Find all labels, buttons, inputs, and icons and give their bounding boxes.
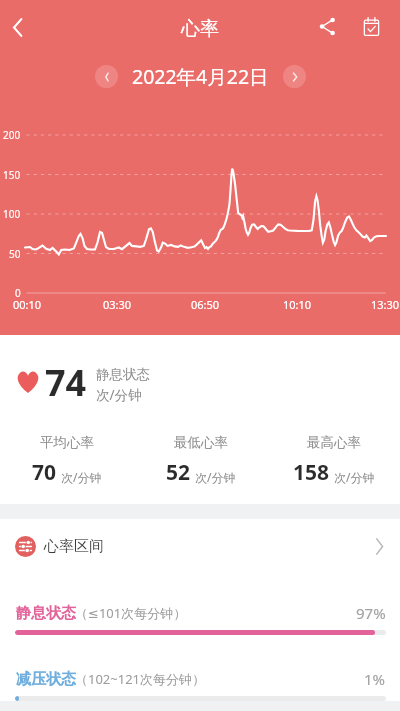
staticText: 150: [3, 168, 21, 182]
staticText: 158: [293, 458, 330, 487]
staticText: （≤101次每分钟）: [75, 604, 187, 622]
staticText: 03:30: [103, 297, 132, 312]
staticText: 心率: [0, 17, 400, 41]
button[interactable]: 减压状态: [0, 669, 400, 701]
button[interactable]: Share: [309, 8, 345, 44]
button[interactable]: Next day: [283, 65, 306, 88]
staticText: 97%: [356, 603, 386, 623]
staticText: 200: [3, 128, 21, 142]
button[interactable]: 平均心率: [0, 434, 134, 487]
staticText: 52: [166, 458, 191, 487]
button[interactable]: Calendar: [353, 8, 389, 44]
staticText: 13:30: [371, 297, 400, 312]
staticText: 静息状态: [96, 366, 150, 383]
staticText: 心率区间: [44, 537, 104, 556]
staticText: 74: [45, 358, 87, 407]
staticText: 次/分钟: [96, 386, 142, 404]
button[interactable]: Previous day: [95, 65, 118, 88]
staticText: 00:10: [13, 297, 42, 312]
button[interactable]: 最低心率: [134, 434, 267, 487]
staticText: 最低心率: [174, 434, 228, 451]
staticText: （102~121次每分钟）: [75, 670, 206, 688]
staticText: 静息状态: [16, 604, 76, 623]
staticText: 次/分钟: [195, 469, 236, 485]
staticText: 1%: [364, 669, 386, 689]
staticText: 10:10: [283, 297, 312, 312]
staticText: 平均心率: [40, 434, 94, 451]
staticText: 次/分钟: [334, 469, 375, 485]
staticText: 06:50: [191, 297, 220, 312]
button[interactable]: Back: [0, 9, 35, 45]
staticText: 减压状态: [16, 670, 76, 689]
button[interactable]: 静息状态: [0, 603, 400, 635]
staticText: 最高心率: [307, 434, 361, 451]
staticText: 70: [32, 458, 57, 487]
button[interactable]: 最高心率: [267, 434, 400, 487]
button[interactable]: 心率区间: [0, 519, 400, 574]
staticText: 0: [15, 286, 21, 300]
staticText: 50: [9, 247, 21, 261]
staticText: 100: [3, 207, 21, 221]
staticText: 次/分钟: [61, 469, 102, 485]
staticText: 2022年4月22日: [132, 63, 269, 90]
